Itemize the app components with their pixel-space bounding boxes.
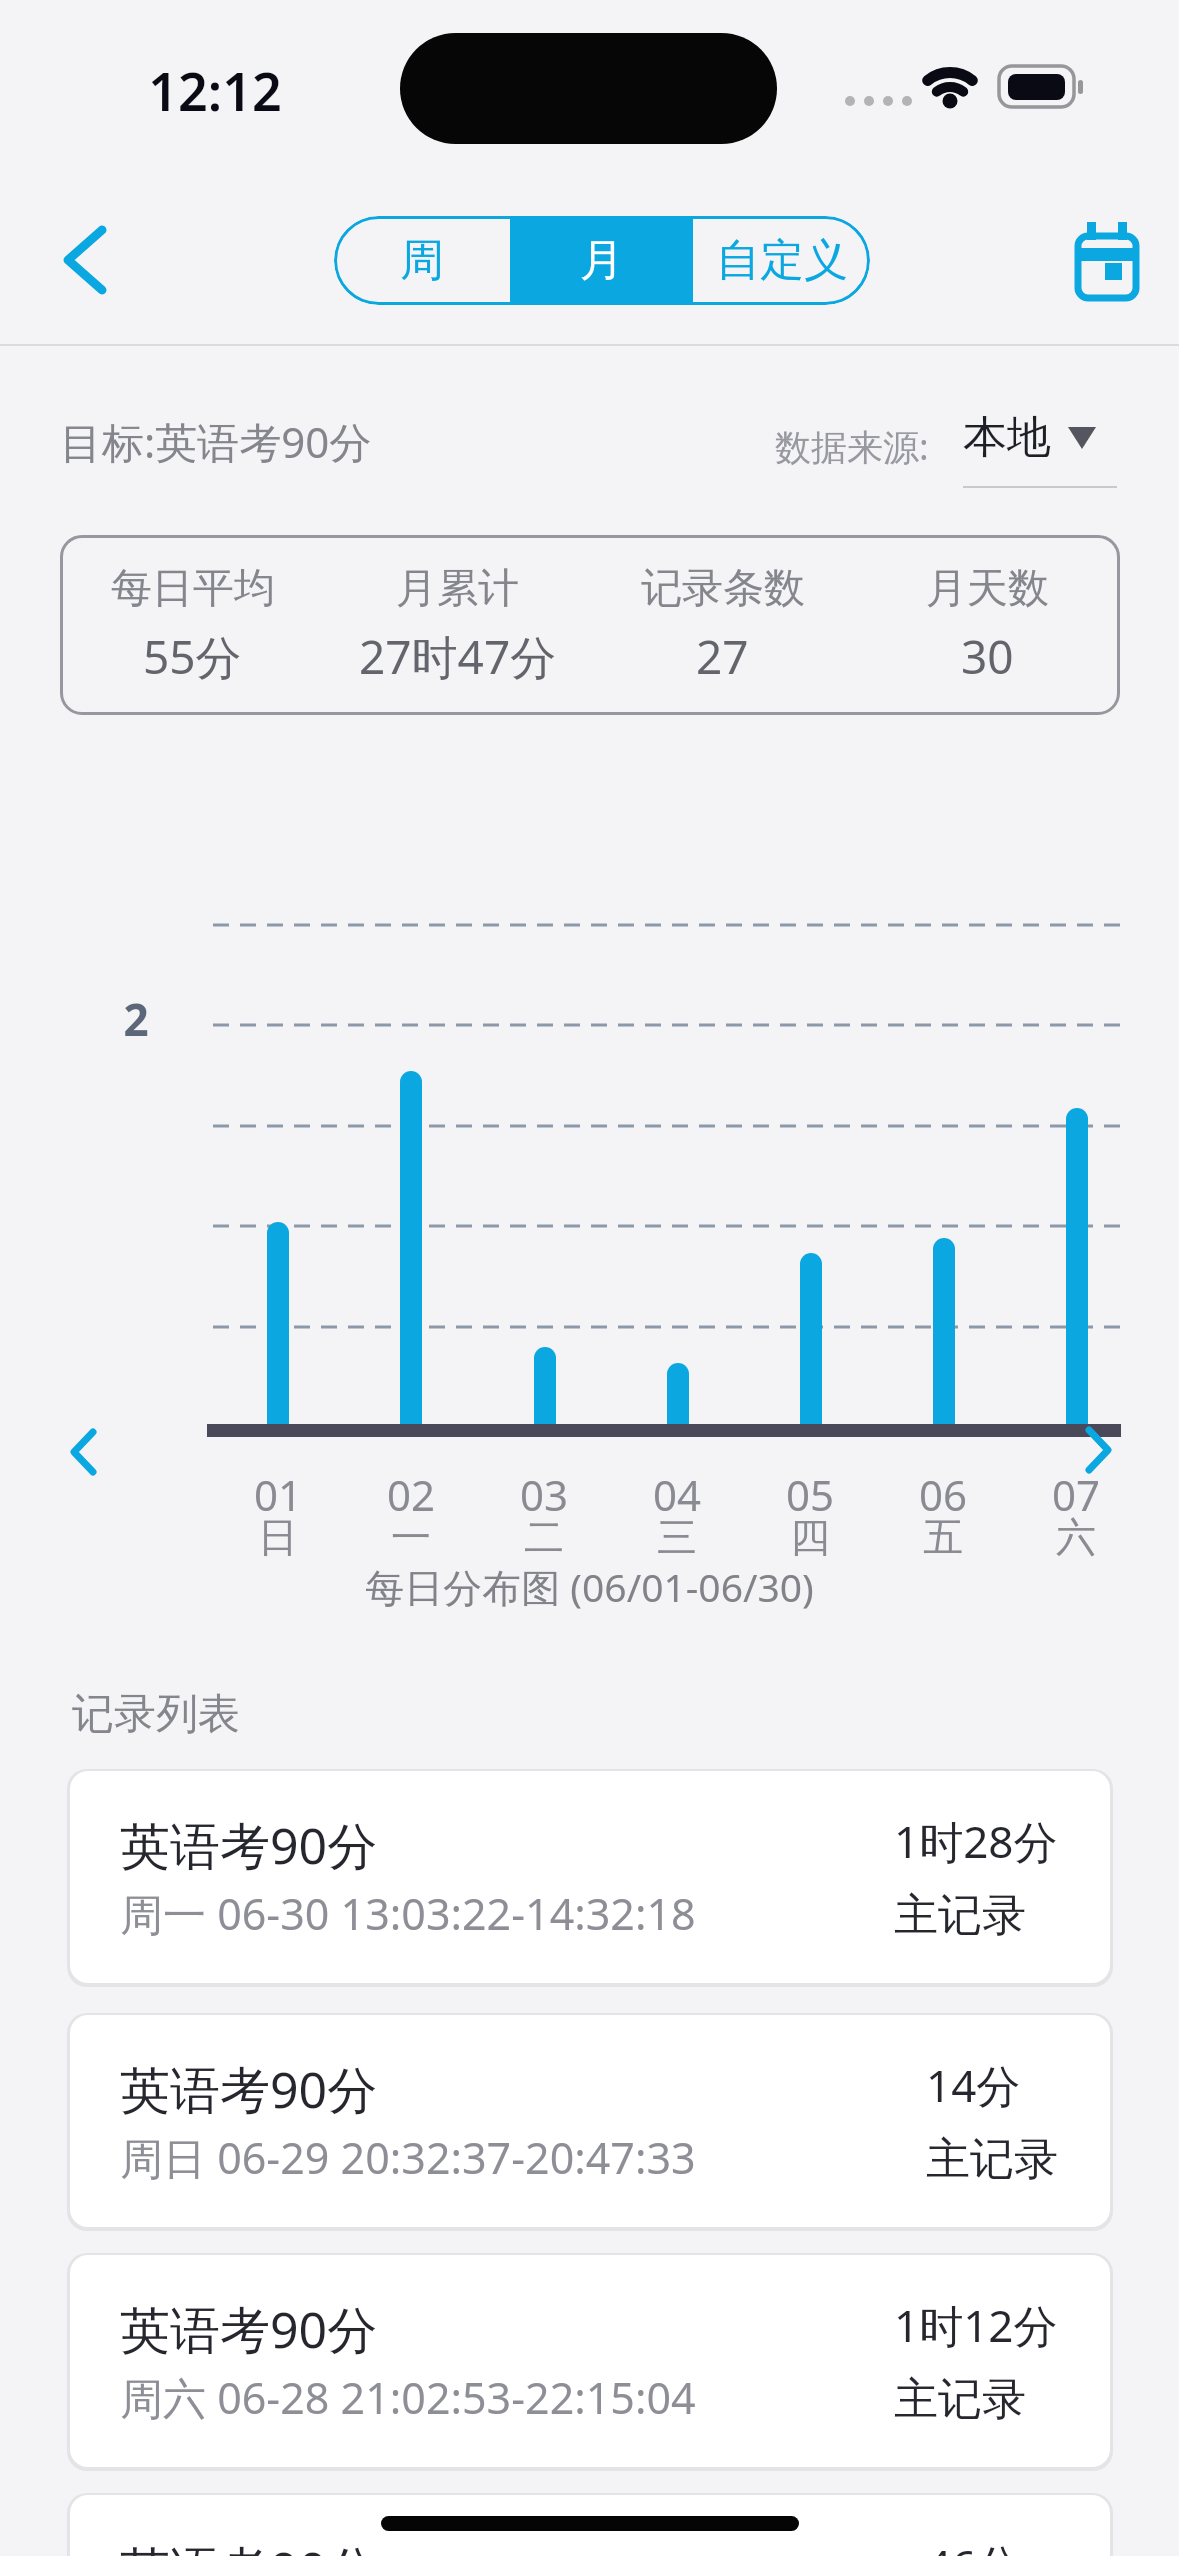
staticText: 四: [750, 1512, 870, 1562]
staticText: 自定义: [716, 233, 848, 288]
staticText: 06: [883, 1466, 1003, 1523]
staticText: 主记录: [894, 2372, 1026, 2427]
staticText: 周: [400, 233, 444, 288]
staticText: 04: [617, 1466, 737, 1523]
button[interactable]: 英语考90分: [70, 2255, 1110, 2467]
staticText: 每日分布图 (06/01-06/30): [0, 1560, 1179, 1613]
staticText: 55分: [143, 625, 242, 688]
staticText: 1时12分: [894, 2295, 1058, 2355]
staticText: 46分: [926, 2535, 1021, 2556]
staticText: 14分: [926, 2055, 1021, 2115]
staticText: 05: [750, 1466, 870, 1523]
staticText: 本地: [963, 410, 1051, 465]
staticText: 30: [961, 625, 1014, 688]
button[interactable]: 英语考90分: [70, 1771, 1110, 1983]
staticText: 主记录: [894, 1888, 1026, 1943]
staticText: 月累计: [396, 563, 519, 615]
button[interactable]: [1066, 216, 1148, 305]
staticText: 记录列表: [72, 1688, 240, 1741]
staticText: 一: [351, 1512, 471, 1562]
staticText: 英语考90分: [120, 2295, 378, 2368]
staticText: 12:12: [130, 55, 300, 126]
button[interactable]: 英语考90分: [70, 2495, 1110, 2556]
button[interactable]: 英语考90分: [70, 2015, 1110, 2227]
button[interactable]: 本地: [945, 400, 1120, 490]
staticText: 01: [218, 1466, 338, 1523]
button[interactable]: 周: [334, 216, 510, 305]
staticText: 1时28分: [894, 1811, 1058, 1871]
staticText: 五: [883, 1512, 1003, 1562]
staticText: 英语考90分: [120, 2535, 378, 2556]
staticText: 周六 06-28 21:02:53-22:15:04: [120, 2368, 696, 2427]
staticText: 27时47分: [359, 625, 557, 688]
staticText: 日: [218, 1512, 338, 1562]
staticText: 03: [484, 1466, 604, 1523]
staticText: 27: [696, 625, 749, 688]
staticText: 每日平均: [111, 563, 275, 615]
staticText: 英语考90分: [120, 1811, 378, 1884]
staticText: 目标:英语考90分: [60, 413, 372, 470]
staticText: 主记录: [926, 2132, 1058, 2187]
staticText: 月天数: [926, 563, 1049, 615]
staticText: 2: [100, 989, 172, 1049]
staticText: 07: [1016, 1466, 1136, 1523]
staticText: 周一 06-30 13:03:22-14:32:18: [120, 1884, 696, 1943]
staticText: 周日 06-29 20:32:37-20:47:33: [120, 2128, 696, 2187]
staticText: 英语考90分: [120, 2055, 378, 2128]
staticText: 数据来源:: [775, 422, 929, 471]
staticText: 三: [617, 1512, 737, 1562]
button[interactable]: 月: [510, 216, 693, 305]
staticText: 六: [1016, 1512, 1136, 1562]
staticText: 02: [351, 1466, 471, 1523]
staticText: 记录条数: [641, 563, 805, 615]
button[interactable]: [40, 208, 130, 313]
staticText: 月: [580, 233, 624, 288]
button[interactable]: 自定义: [693, 216, 870, 305]
staticText: 二: [484, 1512, 604, 1562]
